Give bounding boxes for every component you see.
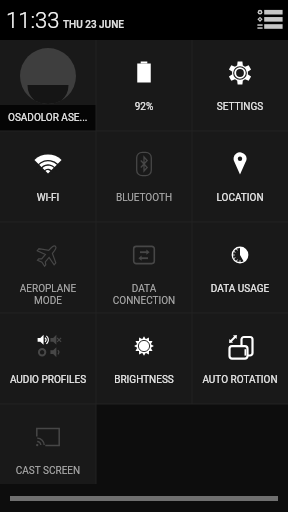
button[interactable]: WI-FI <box>0 131 96 222</box>
staticText: THU 23 JUNE <box>63 19 124 31</box>
staticText: AEROPLANE MODE <box>1 283 95 306</box>
staticText: OSADOLOR ASE... <box>8 112 88 124</box>
button[interactable]: 92% <box>96 40 192 131</box>
staticText: 11:33 <box>6 8 60 34</box>
staticText: CAST SCREEN <box>1 465 95 477</box>
staticText: AUTO ROTATION <box>193 374 287 386</box>
button[interactable]: AEROPLANE MODE <box>0 222 96 313</box>
staticText: 92% <box>97 101 191 113</box>
staticText: AUDIO PROFILES <box>1 374 95 386</box>
button[interactable]: AUDIO PROFILES <box>0 313 96 404</box>
button[interactable]: Notifications <box>255 8 285 32</box>
button[interactable]: DATA USAGE <box>192 222 288 313</box>
staticText: BLUETOOTH <box>97 192 191 204</box>
button[interactable]: CAST SCREEN <box>0 404 96 484</box>
staticText: WI-FI <box>1 192 95 204</box>
button[interactable]: BRIGHTNESS <box>96 313 192 404</box>
button[interactable]: DATA CONNECTION <box>96 222 192 313</box>
button[interactable]: BLUETOOTH <box>96 131 192 222</box>
button[interactable]: AUTO ROTATION <box>192 313 288 404</box>
button[interactable]: LOCATION <box>192 131 288 222</box>
staticText: BRIGHTNESS <box>97 374 191 386</box>
staticText: LOCATION <box>193 192 287 204</box>
button[interactable]: SETTINGS <box>192 40 288 131</box>
staticText: DATA USAGE <box>193 283 287 295</box>
staticText: SETTINGS <box>193 101 287 113</box>
button[interactable]: OSADOLOR ASE... <box>0 40 96 131</box>
staticText: DATA CONNECTION <box>97 283 191 306</box>
